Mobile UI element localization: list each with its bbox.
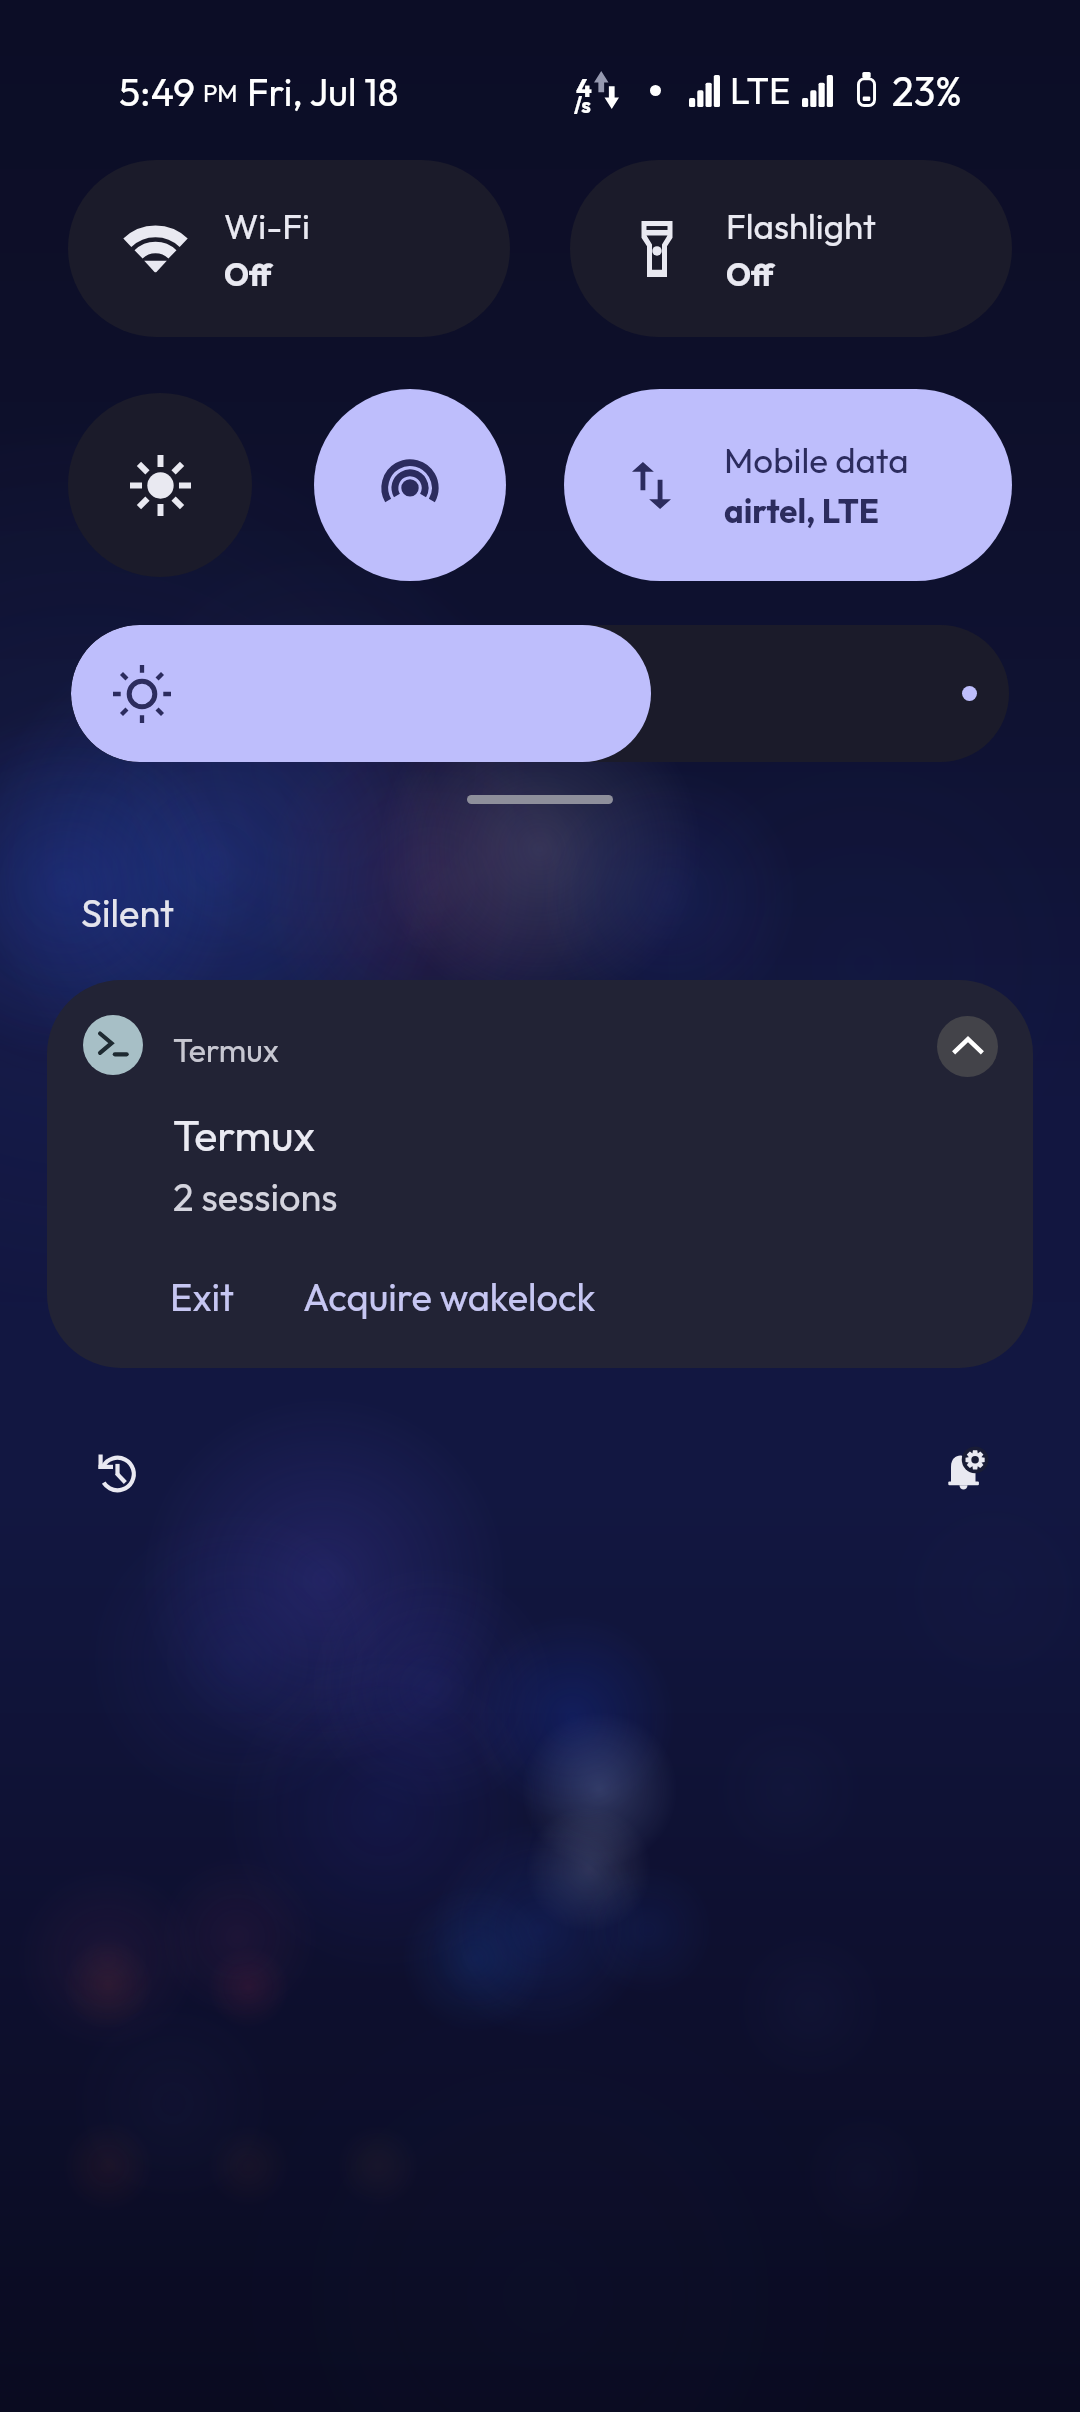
staticText: Fri, Jul 18 [247, 68, 399, 116]
button[interactable]: Auto brightness [68, 393, 252, 577]
staticText: 5:49 [119, 67, 195, 116]
button[interactable]: Flashlight [570, 160, 1012, 337]
button[interactable]: Expand [937, 1016, 998, 1077]
staticText: Flashlight [726, 204, 876, 248]
staticText: Exit [170, 1273, 235, 1321]
staticText: Off [726, 255, 775, 294]
staticText: Off [224, 255, 273, 294]
staticText: airtel, LTE [724, 490, 880, 532]
staticText: LTE [730, 68, 791, 113]
staticText: Mobile data [724, 438, 909, 482]
button[interactable]: Exit [170, 1273, 235, 1321]
staticText: 23% [892, 66, 962, 116]
button[interactable]: Termux [47, 980, 1033, 1368]
button[interactable]: Mobile data [564, 389, 1012, 581]
staticText: PM [203, 78, 238, 108]
button[interactable]: Brightness [71, 625, 1009, 762]
button[interactable]: Acquire wakelock [303, 1273, 596, 1321]
staticText: Silent [81, 889, 174, 937]
staticText: 4 [576, 71, 592, 104]
button[interactable]: Notification settings [925, 1429, 1007, 1511]
staticText: Wi-Fi [224, 204, 310, 248]
button[interactable]: Wi-Fi [68, 160, 510, 337]
staticText: Acquire wakelock [303, 1273, 596, 1321]
button[interactable]: Cast [314, 389, 506, 581]
staticText: 2 sessions [173, 1173, 338, 1221]
button[interactable]: Notification history [75, 1428, 157, 1510]
staticText: Termux [173, 1108, 316, 1162]
staticText: /s [574, 92, 591, 118]
staticText: Termux [173, 1030, 279, 1070]
